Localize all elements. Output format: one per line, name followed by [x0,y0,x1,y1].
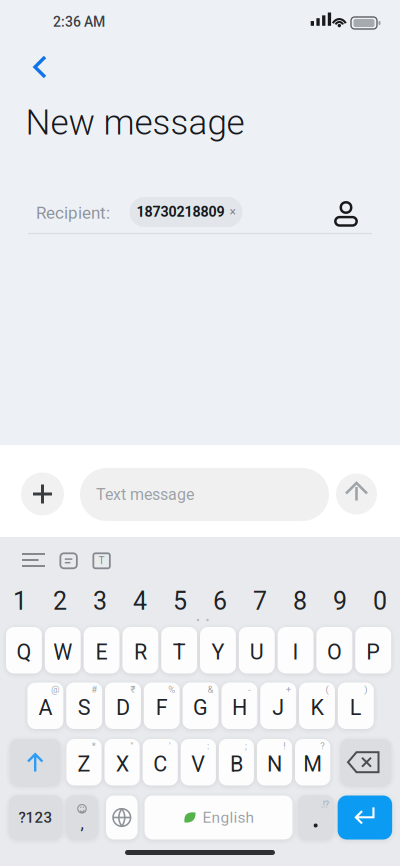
staticText: N [267,751,282,777]
button[interactable]: 6 [201,584,239,618]
button[interactable]: J [260,682,296,729]
staticText: * [92,740,96,751]
staticText: H [232,695,247,720]
button[interactable]: Z [66,739,102,785]
staticText: ₹ [130,684,135,695]
button[interactable]: T [161,627,197,673]
button[interactable] [19,50,63,84]
button[interactable]: C [143,739,178,785]
button[interactable] [340,739,391,785]
staticText: R [134,639,147,665]
staticText: P [366,639,380,665]
button[interactable]: R [122,627,158,673]
staticText: Q [16,639,31,665]
staticText: 4 [133,587,147,616]
button[interactable]: 5 [161,584,199,618]
staticText: 5 [173,587,187,616]
button[interactable]: X [104,739,140,785]
button[interactable]: 7 [241,584,279,618]
button[interactable]: 1 [1,584,39,618]
staticText: Recipient: [36,203,110,223]
staticText: 7 [253,587,267,616]
button[interactable]: W [45,627,81,673]
staticText: Text message [96,485,194,504]
staticText: : [207,740,209,751]
staticText: 1 [13,587,27,616]
button[interactable]: N [257,739,292,785]
staticText: T [173,639,186,665]
button[interactable]: Y [200,627,236,673]
button[interactable]: Q [6,627,42,673]
staticText: ) [364,684,367,695]
button[interactable]: L [338,682,374,729]
button[interactable]: E [84,627,120,673]
staticText: × [229,205,235,219]
button[interactable]: 18730218809 [129,197,242,227]
button[interactable]: .!? [298,795,333,839]
staticText: Z [78,751,91,777]
button[interactable] [60,553,77,568]
staticText: ( [325,684,328,695]
button[interactable]: 8 [281,584,319,618]
staticText: English [202,808,254,827]
button[interactable]: I [278,627,314,673]
button[interactable] [336,473,377,514]
button[interactable]: 9 [321,584,359,618]
button[interactable]: P [355,627,391,673]
staticText: S [78,695,91,720]
button[interactable]: English [144,795,292,839]
button[interactable] [106,795,138,839]
staticText: I [293,639,299,665]
staticText: % [168,684,175,695]
staticText: X [116,751,129,777]
button[interactable]: , [66,795,98,839]
staticText: 2:36 AM [53,14,105,30]
button[interactable]: Text message [80,468,329,521]
button[interactable]: D [105,682,141,729]
button[interactable] [10,739,60,785]
staticText: 6 [213,587,227,616]
staticText: .!? [321,799,329,810]
button[interactable]: 4 [121,584,159,618]
button[interactable]: K [299,682,335,729]
button[interactable]: H [221,682,257,729]
staticText: @ [51,684,60,695]
button[interactable]: ?123 [9,795,62,839]
staticText: D [116,695,130,720]
button[interactable]: G [183,682,219,729]
staticText: J [272,695,284,720]
staticText: T [99,555,105,567]
staticText: , [80,813,83,833]
button[interactable] [22,553,45,567]
button[interactable]: M [295,739,330,785]
button[interactable]: V [181,739,216,785]
staticText: O [327,639,342,665]
staticText: ?123 [18,809,52,826]
button[interactable]: 3 [81,584,119,618]
button[interactable]: F [144,682,180,729]
staticText: ; [245,740,247,751]
staticText: A [38,695,52,720]
staticText: # [91,684,97,695]
button[interactable] [338,795,392,839]
staticText: V [191,751,205,777]
button[interactable] [21,472,64,515]
staticText: Y [211,639,224,665]
staticText: ? [320,740,324,751]
staticText: W [53,639,72,665]
button[interactable]: A [27,682,63,729]
staticText: - [248,684,251,695]
button[interactable]: T [93,553,110,568]
staticText: G [193,695,208,720]
button[interactable]: B [219,739,254,785]
button[interactable]: 2 [41,584,79,618]
staticText: 0 [373,587,387,616]
staticText: 9 [333,587,347,616]
staticText: M [303,751,322,777]
button[interactable] [332,201,360,226]
button[interactable]: U [239,627,275,673]
button[interactable]: 0 [361,584,399,618]
button[interactable]: S [66,682,102,729]
staticText: ! [283,740,285,751]
button[interactable]: O [316,627,352,673]
